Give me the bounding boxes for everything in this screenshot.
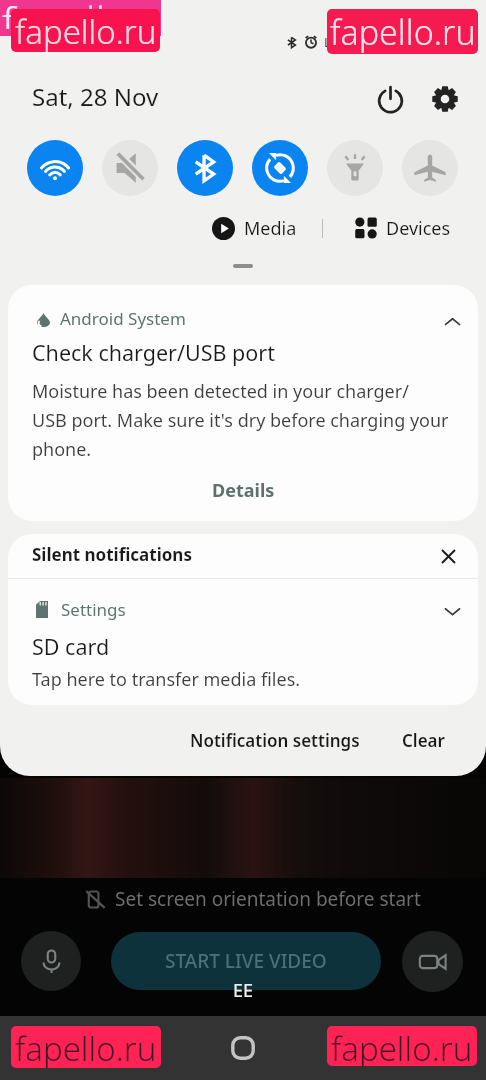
staticText: Clear (402, 729, 445, 752)
staticText: Sat, 28 Nov (32, 80, 159, 113)
staticText: SD card (32, 632, 110, 661)
button[interactable]: Collapse notification (438, 307, 466, 335)
button[interactable]: Settings (426, 80, 464, 118)
staticText: fapello.ru (15, 9, 157, 52)
button[interactable]: Microphone (21, 931, 81, 991)
staticText: 21:48 (30, 33, 69, 53)
staticText: fapello.ru (331, 1026, 473, 1066)
staticText: Moisture has been detected in your charg… (32, 379, 449, 461)
staticText: LTE 59 (324, 33, 367, 51)
button[interactable]: Power (371, 80, 409, 118)
button[interactable]: Settings (8, 579, 478, 705)
button[interactable]: START LIVE VIDEO (111, 932, 381, 990)
button[interactable]: Expand notification (438, 597, 466, 625)
button[interactable]: Home (219, 1024, 267, 1072)
button[interactable]: Media (212, 214, 297, 242)
staticText: fapello.ru (330, 9, 476, 54)
button[interactable]: Notification settings (176, 721, 374, 760)
button[interactable]: Flight mode (402, 140, 458, 196)
button[interactable]: Sound off (102, 140, 158, 196)
staticText: Devices (386, 216, 451, 241)
staticText: Set screen orientation before start (115, 886, 421, 912)
button[interactable]: Dismiss silent notifications (430, 538, 466, 574)
button[interactable]: Wi-Fi (27, 140, 83, 196)
staticText: Android System (60, 307, 186, 330)
staticText: EE (233, 978, 254, 1003)
staticText: Media (244, 216, 297, 241)
staticText: Settings (61, 598, 126, 621)
button[interactable]: Devices (355, 214, 451, 242)
staticText: Silent notifications (32, 543, 192, 566)
staticText: fapello.ru (15, 1026, 157, 1068)
button[interactable]: Flashlight (327, 140, 383, 196)
staticText: Onlyrans.com/tanlaamazon (296, 1056, 486, 1076)
staticText: START LIVE VIDEO (165, 948, 327, 974)
staticText: Notification settings (190, 729, 360, 752)
button[interactable]: Clear (388, 721, 459, 760)
button[interactable]: Details (192, 471, 295, 510)
button[interactable]: Auto rotate (252, 140, 308, 196)
staticText: Check charger/USB port (32, 338, 275, 367)
staticText: Details (212, 478, 275, 503)
button[interactable]: Camera (402, 931, 463, 992)
button[interactable]: Android System (8, 285, 478, 521)
button[interactable]: Bluetooth (177, 140, 233, 196)
staticText: fapello.ru (2, 0, 163, 29)
staticText: Tap here to transfer media files. (32, 667, 301, 692)
